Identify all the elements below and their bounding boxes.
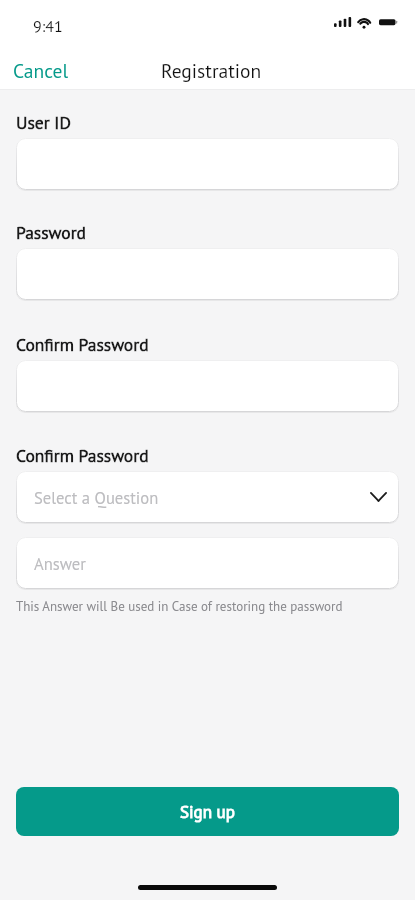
staticText: Confirm Password bbox=[16, 444, 149, 467]
staticText: 9:41 bbox=[33, 16, 63, 37]
staticText: Registration bbox=[161, 58, 262, 83]
staticText: Sign up bbox=[180, 801, 235, 823]
staticText: This Answer will Be used in Case of rest… bbox=[16, 598, 343, 615]
staticText: Confirm Password bbox=[16, 333, 149, 356]
button[interactable]: Sign up bbox=[16, 787, 399, 836]
button[interactable]: Cancel bbox=[0, 52, 82, 88]
other: Select a question bbox=[370, 492, 387, 502]
button[interactable] bbox=[16, 358, 399, 414]
button[interactable]: Select a Question bbox=[16, 469, 399, 525]
button[interactable]: Answer bbox=[16, 535, 399, 591]
staticText: User ID bbox=[16, 111, 71, 134]
staticText: Select a Question bbox=[34, 487, 159, 508]
button[interactable] bbox=[16, 246, 399, 302]
staticText: Cancel bbox=[13, 58, 69, 83]
staticText: Answer bbox=[34, 553, 86, 574]
button[interactable] bbox=[16, 136, 399, 192]
staticText: Password bbox=[16, 221, 86, 244]
